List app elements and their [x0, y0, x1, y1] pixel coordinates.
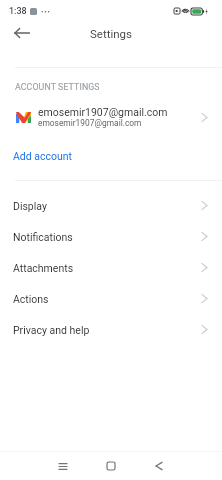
button[interactable]: Attachments: [0, 252, 222, 283]
button[interactable]: Privacy and help: [0, 314, 222, 345]
staticText: 1:38: [9, 6, 27, 17]
button[interactable]: Add account: [0, 142, 222, 170]
button[interactable]: Actions: [0, 283, 222, 314]
button[interactable]: Notifications: [0, 221, 222, 252]
button[interactable]: Recent apps: [50, 453, 76, 479]
button[interactable]: Back: [146, 453, 172, 479]
button[interactable]: emosemir1907@gmail.com: [0, 100, 222, 134]
staticText: Notifications: [13, 231, 200, 243]
staticText: Privacy and help: [13, 324, 200, 336]
staticText: emosemir1907@gmail.com: [38, 118, 142, 128]
staticText: Settings: [90, 27, 132, 40]
staticText: Attachments: [13, 262, 200, 274]
staticText: Add account: [13, 150, 73, 162]
button[interactable]: Back: [7, 18, 37, 48]
button[interactable]: Home: [98, 453, 124, 479]
staticText: emosemir1907@gmail.com: [38, 106, 168, 118]
staticText: ACCOUNT SETTINGS: [15, 82, 100, 92]
button[interactable]: Display: [0, 190, 222, 221]
staticText: Display: [13, 200, 200, 212]
staticText: Actions: [13, 293, 200, 305]
